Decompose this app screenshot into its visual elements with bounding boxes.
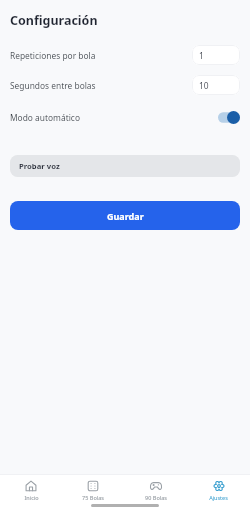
button[interactable]: 10 bbox=[192, 75, 240, 95]
button[interactable]: Probar voz bbox=[10, 155, 240, 177]
staticText: Configuración bbox=[10, 12, 98, 29]
staticText: Inicio bbox=[24, 494, 39, 501]
staticText: 90 Bolas bbox=[145, 494, 167, 501]
button[interactable]: 90 Bolas bbox=[124, 475, 187, 501]
button[interactable]: Modo automático bbox=[218, 111, 240, 124]
button[interactable]: Guardar bbox=[10, 201, 240, 230]
staticText: Repeticiones por bola bbox=[10, 50, 96, 61]
button[interactable]: Inicio bbox=[0, 475, 62, 501]
staticText: Probar voz bbox=[19, 161, 60, 171]
staticText: 10 bbox=[199, 80, 209, 91]
staticText: 1 bbox=[199, 50, 204, 61]
staticText: Modo automático bbox=[10, 112, 80, 123]
staticText: Segundos entre bolas bbox=[10, 80, 96, 91]
button[interactable]: Modo automático bbox=[10, 106, 240, 128]
button[interactable]: Ajustes bbox=[187, 475, 250, 501]
button[interactable]: 1 bbox=[192, 45, 240, 65]
staticText: Ajustes bbox=[209, 494, 228, 501]
button[interactable]: 75 Bolas bbox=[62, 475, 124, 501]
staticText: 75 Bolas bbox=[82, 494, 104, 501]
staticText: Guardar bbox=[107, 210, 144, 222]
